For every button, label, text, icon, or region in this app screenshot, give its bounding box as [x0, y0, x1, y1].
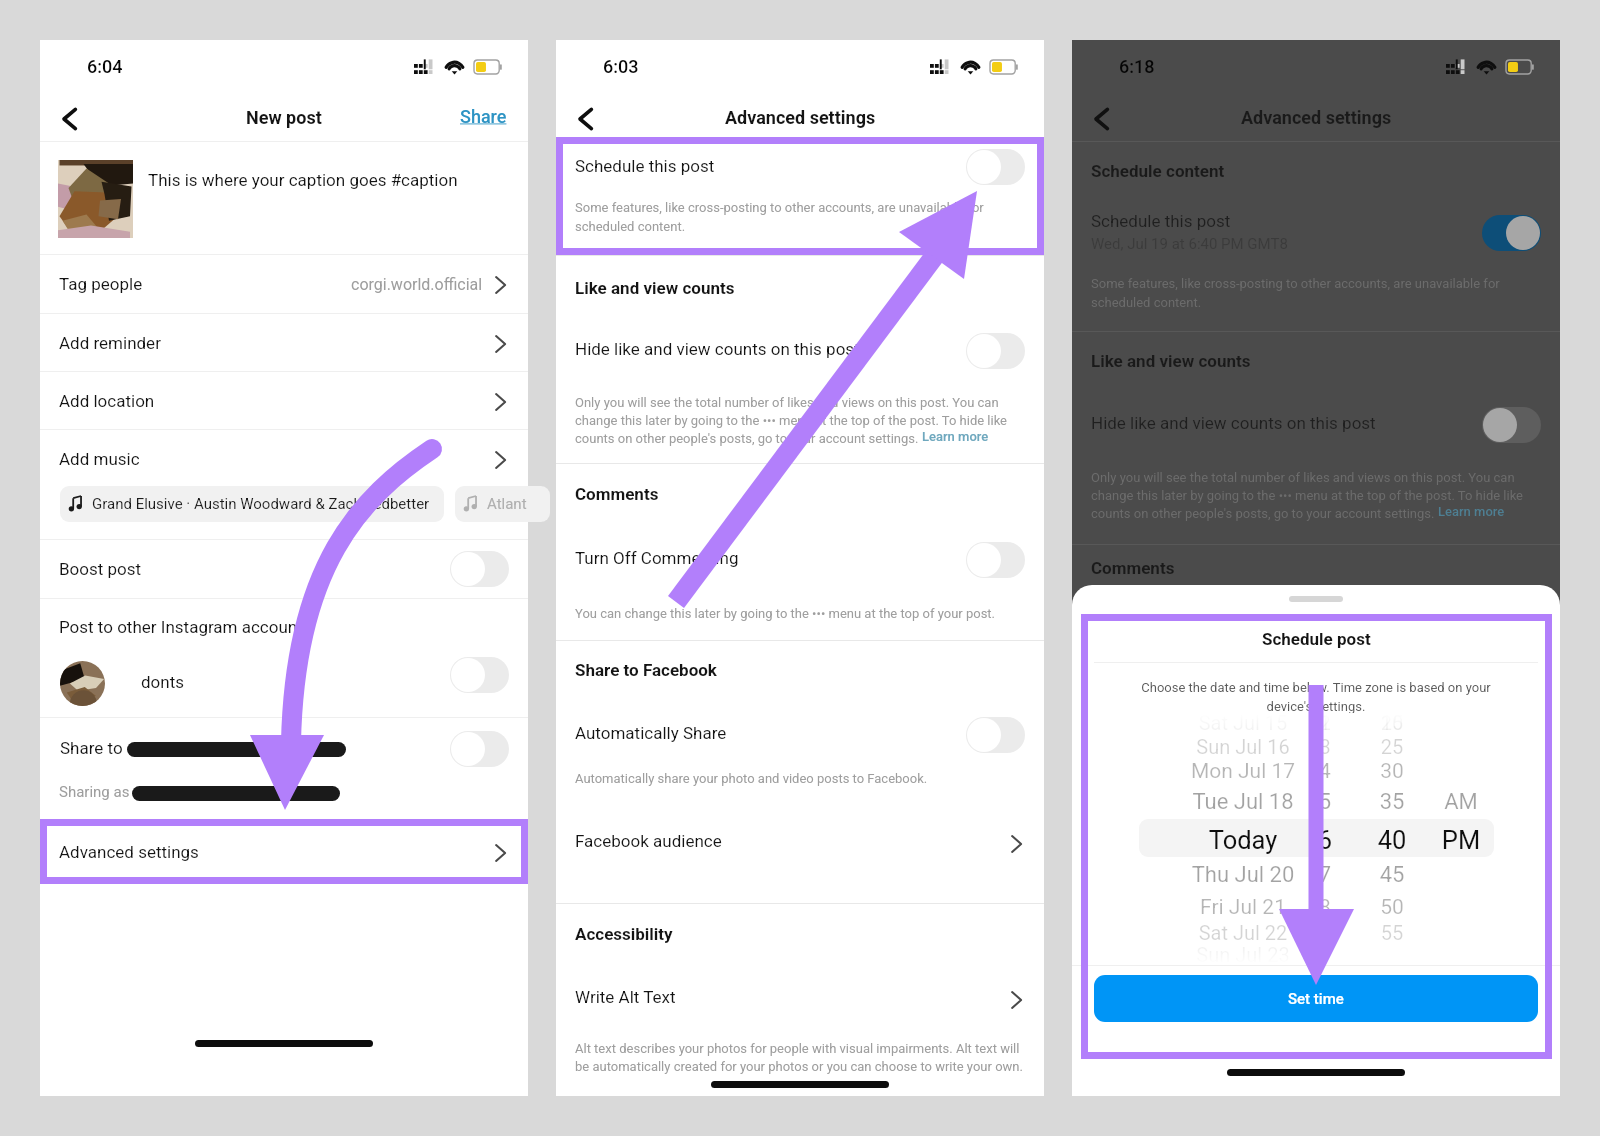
staticText: 55 [1372, 921, 1412, 944]
staticText: Post to other Instagram accounts [59, 617, 312, 637]
staticText: Sharing as [59, 783, 130, 801]
staticText: Sat Jul 15 [1140, 711, 1346, 734]
button[interactable]: Boost post [450, 551, 509, 587]
staticText: Facebook audience [575, 831, 722, 851]
staticText: Sun Jul 23 [1140, 943, 1346, 966]
button[interactable]: Hide like and view counts on this post [556, 323, 1044, 379]
staticText: Grand Elusive · Austin Woodward & Zach L… [92, 495, 430, 513]
staticText: Add location [59, 391, 155, 411]
button[interactable]: Hide like and view counts on this post [1072, 397, 1560, 453]
staticText: Share to [60, 738, 123, 758]
button[interactable]: Advanced settings [40, 820, 528, 882]
staticText: 20 [1372, 711, 1412, 734]
button[interactable]: Schedule this post [966, 149, 1025, 185]
staticText: 7 [1307, 862, 1343, 888]
button[interactable]: Atlant [455, 486, 550, 522]
staticText: 40 [1372, 825, 1412, 855]
button[interactable]: Grand Elusive · Austin Woodward & Zach L… [60, 486, 444, 522]
button[interactable]: Facebook audience [556, 814, 1044, 870]
staticText: corgi.world.official [351, 275, 483, 294]
staticText: 6:04 [87, 56, 123, 77]
staticText: Sat Jul 22 [1140, 921, 1346, 944]
staticText: Choose the date and time below. Time zon… [1134, 680, 1498, 714]
button[interactable]: Hide like and view counts [1482, 407, 1541, 443]
staticText: Advanced settings [59, 842, 199, 862]
staticText: Some features, like cross-posting to oth… [575, 200, 1027, 234]
staticText: Advanced settings [725, 107, 876, 128]
staticText: Automatically Share [575, 723, 727, 743]
staticText: Automatically share your photo and video… [575, 771, 1027, 786]
staticText: 25 [1372, 735, 1412, 758]
staticText: Atlant [487, 495, 527, 513]
staticText: 4 [1307, 759, 1343, 784]
staticText: Tag people [59, 274, 143, 294]
staticText: Only you will see the total number of li… [1091, 470, 1543, 521]
staticText: Turn Off Commenting [575, 548, 739, 568]
staticText: Share to Facebook [575, 660, 717, 680]
staticText: donts [141, 672, 185, 692]
staticText: Hide like and view counts on this post [575, 339, 860, 359]
staticText: Wed, Jul 19 at 6:40 PM GMT8 [1091, 235, 1288, 253]
staticText: Write Alt Text [575, 987, 676, 1007]
staticText: Fri Jul 21 [1140, 895, 1346, 920]
button[interactable]: Back [1085, 102, 1119, 136]
button[interactable]: Share [460, 106, 507, 127]
staticText: Alt text describes your photos for peopl… [575, 1041, 1027, 1074]
button[interactable]: Schedule this post [1072, 208, 1560, 266]
button[interactable]: Automatically Share [966, 717, 1025, 753]
staticText: 9 [1307, 921, 1343, 944]
staticText: Schedule post [1262, 629, 1371, 649]
button[interactable]: Tag people [40, 255, 528, 313]
staticText: Comments [1091, 558, 1175, 578]
staticText: Schedule this post [575, 156, 715, 176]
staticText: Like and view counts [575, 278, 735, 298]
staticText: Boost post [59, 559, 142, 579]
button[interactable]: This is where your caption goes #caption [40, 142, 528, 254]
button[interactable]: Automatically Share [556, 707, 1044, 763]
staticText: 30 [1372, 759, 1412, 784]
staticText: 2 [1307, 711, 1343, 734]
button[interactable]: Set time [1094, 975, 1538, 1022]
button[interactable]: Turn Off Commenting [966, 542, 1025, 578]
staticText: Share [460, 106, 507, 127]
staticText: Hide like and view counts on this post [1091, 413, 1376, 433]
staticText: 50 [1372, 895, 1412, 920]
staticText: 15 [1372, 711, 1412, 734]
button[interactable]: Turn Off Commenting [556, 532, 1044, 588]
staticText: New post [246, 107, 322, 128]
staticText: AM [1435, 789, 1487, 815]
button[interactable]: Schedule this post [556, 142, 1044, 254]
staticText: 6:03 [603, 56, 639, 77]
staticText: 6:18 [1119, 56, 1155, 77]
staticText: Learn more [1438, 504, 1505, 519]
staticText: Set time [1288, 990, 1344, 1008]
button[interactable]: Share to [450, 731, 509, 767]
staticText: Tue Jul 18 [1140, 789, 1346, 815]
staticText: Like and view counts [1091, 351, 1251, 371]
staticText: This is where your caption goes #caption [148, 170, 458, 190]
button[interactable]: Post to donts [450, 657, 509, 693]
button[interactable]: Add location [40, 372, 528, 429]
staticText: Add music [59, 449, 140, 469]
staticText: 5 [1307, 789, 1343, 815]
staticText: Comments [575, 484, 659, 504]
button[interactable]: Schedule this post [1482, 215, 1541, 251]
button[interactable]: Post to other Instagram accounts [40, 599, 528, 717]
staticText: 45 [1372, 862, 1412, 888]
button[interactable]: Back [569, 102, 603, 136]
button[interactable]: Add music [40, 430, 528, 487]
button[interactable]: Share to [40, 718, 528, 819]
staticText: Advanced settings [1241, 107, 1392, 128]
staticText: You can change this later by going to th… [575, 606, 1027, 621]
button[interactable]: Hide like and view counts [966, 333, 1025, 369]
staticText: 8 [1307, 895, 1343, 920]
button[interactable]: Add reminder [40, 314, 528, 371]
button[interactable]: Boost post [40, 540, 528, 598]
button[interactable]: Back [53, 102, 87, 136]
staticText: Today [1140, 825, 1346, 855]
button[interactable]: Write Alt Text [556, 970, 1044, 1026]
staticText: Some features, like cross-posting to oth… [1091, 276, 1543, 310]
staticText: Only you will see the total number of li… [575, 395, 1027, 446]
staticText: Add reminder [59, 333, 161, 353]
staticText: 35 [1372, 789, 1412, 815]
